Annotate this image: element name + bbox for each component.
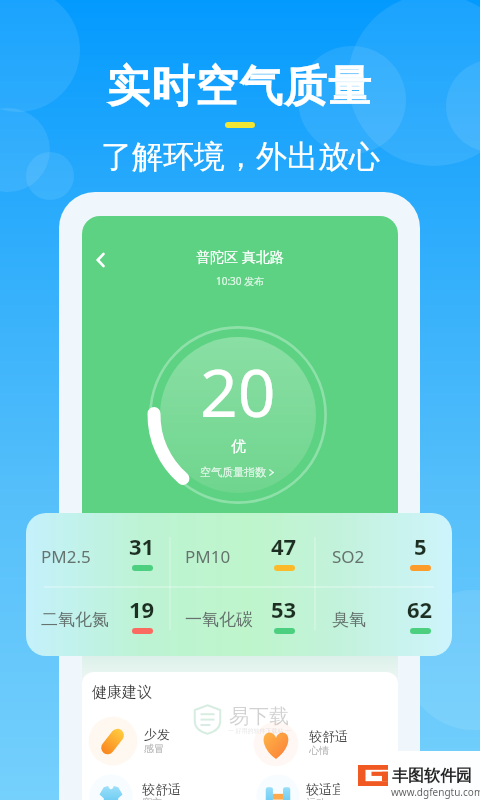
staticText: 一氧化碳 [185,609,253,630]
staticText: 实时空气质量 [107,60,373,114]
staticText: 臭氧 [332,609,366,630]
staticText: 运动 [306,796,326,800]
button[interactable] [89,717,239,763]
staticText: 较适宜 [306,781,345,797]
staticText: 5 [414,531,427,561]
staticText: 优 [231,437,246,456]
button[interactable]: Back [85,244,117,276]
button[interactable] [26,588,168,650]
staticText: 53 [271,594,297,624]
staticText: 62 [407,594,433,624]
staticText: 31 [129,531,155,561]
button[interactable] [170,525,312,587]
button[interactable]: 空气质量指数 [200,465,276,479]
staticText: 空气质量指数 [200,465,266,479]
staticText: 47 [271,531,297,561]
staticText: 较舒适 [142,781,181,797]
staticText: 少发 [144,726,170,742]
staticText: 心情 [309,744,329,757]
staticText: 了解环境，外出放心 [101,137,380,176]
staticText: www.dgfengtu.com [391,785,480,799]
staticText: SO2 [332,545,365,568]
staticText: PM10 [185,545,231,568]
staticText: 健康建议 [92,683,152,702]
staticText: 10:30 发布 [216,274,265,288]
staticText: PM2.5 [41,545,91,568]
button[interactable] [87,772,237,800]
staticText: 普陀区 真北路 [196,247,284,266]
button[interactable] [317,525,452,587]
button[interactable] [317,588,452,650]
staticText: 较舒适 [309,728,348,744]
staticText: 一 好用的软件下载站 一 [228,727,292,735]
staticText: 感冒 [144,742,164,755]
staticText: 易下载 [229,704,289,729]
staticText: 穿衣 [142,796,162,800]
staticText: 20 [200,346,276,436]
button[interactable] [252,720,398,766]
button[interactable] [26,525,168,587]
staticText: 二氧化氮 [41,609,109,630]
button[interactable] [170,588,312,650]
staticText: 19 [129,594,155,624]
staticText: 丰图软件园 [392,766,472,786]
button[interactable] [254,772,398,800]
